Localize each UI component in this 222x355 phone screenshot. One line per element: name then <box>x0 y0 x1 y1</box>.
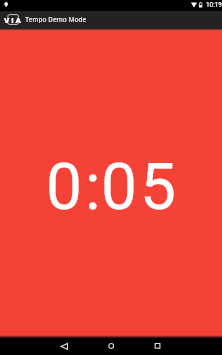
button[interactable]: Back <box>50 337 78 355</box>
staticText: 5 <box>140 150 176 225</box>
staticText: 0 <box>101 150 137 225</box>
button[interactable]: Recent apps <box>143 337 171 355</box>
staticText: 10:19 <box>206 1 222 9</box>
staticText: 0 <box>46 150 82 225</box>
button[interactable]: Home <box>97 337 125 355</box>
button[interactable]: VIA <box>0 11 24 30</box>
staticText: Tempo Demo Mode <box>25 15 87 24</box>
staticText: : <box>85 150 101 225</box>
staticText: VIA <box>4 16 23 25</box>
